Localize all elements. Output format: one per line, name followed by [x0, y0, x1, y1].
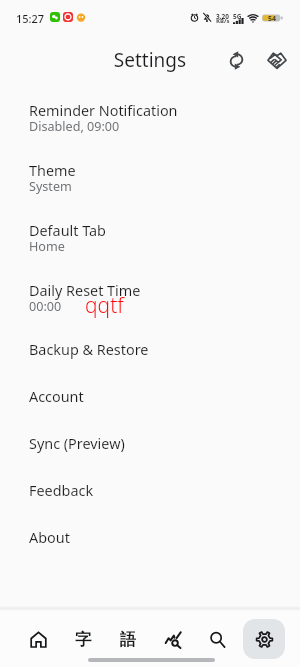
staticText: Feedback: [29, 481, 94, 501]
button[interactable]: Feedback: [0, 471, 300, 518]
staticText: 5G: [233, 12, 242, 21]
staticText: Daily Reset Time: [29, 281, 141, 301]
button[interactable]: Sync (Preview): [0, 424, 300, 471]
staticText: 字: [75, 629, 92, 650]
button[interactable]: Sync: [216, 40, 256, 80]
button[interactable]: 語: [107, 619, 149, 659]
button[interactable]: Daily Reset Time: [0, 270, 300, 330]
staticText: qqtf: [85, 291, 124, 320]
staticText: Disabled, 09:00: [29, 118, 120, 135]
button[interactable]: Home: [17, 619, 59, 659]
button[interactable]: 字: [62, 619, 104, 659]
staticText: Account: [29, 387, 84, 407]
staticText: Settings: [0, 47, 300, 73]
staticText: About: [29, 528, 70, 548]
staticText: 00:00: [29, 298, 62, 315]
staticText: KB/s: [216, 17, 230, 25]
button[interactable]: Statistics: [152, 619, 194, 659]
staticText: 3.20: [216, 12, 229, 21]
staticText: 54: [268, 14, 277, 24]
staticText: Theme: [29, 161, 76, 181]
staticText: Reminder Notification: [29, 101, 178, 121]
staticText: Default Tab: [29, 221, 106, 241]
button[interactable]: Search: [196, 619, 238, 659]
button[interactable]: Account: [0, 377, 300, 424]
button[interactable]: Default Tab: [0, 210, 300, 270]
staticText: 15:27: [16, 11, 45, 26]
staticText: System: [29, 178, 72, 195]
button[interactable]: Backup & Restore: [0, 330, 300, 377]
button[interactable]: Reminder Notification: [0, 90, 300, 150]
staticText: Sync (Preview): [29, 434, 125, 454]
button[interactable]: Partner: [257, 40, 297, 80]
button[interactable]: Theme: [0, 150, 300, 210]
staticText: Backup & Restore: [29, 340, 149, 360]
staticText: 語: [120, 629, 137, 650]
staticText: Home: [29, 238, 65, 255]
button[interactable]: Settings: [243, 619, 285, 659]
button[interactable]: About: [0, 518, 300, 565]
